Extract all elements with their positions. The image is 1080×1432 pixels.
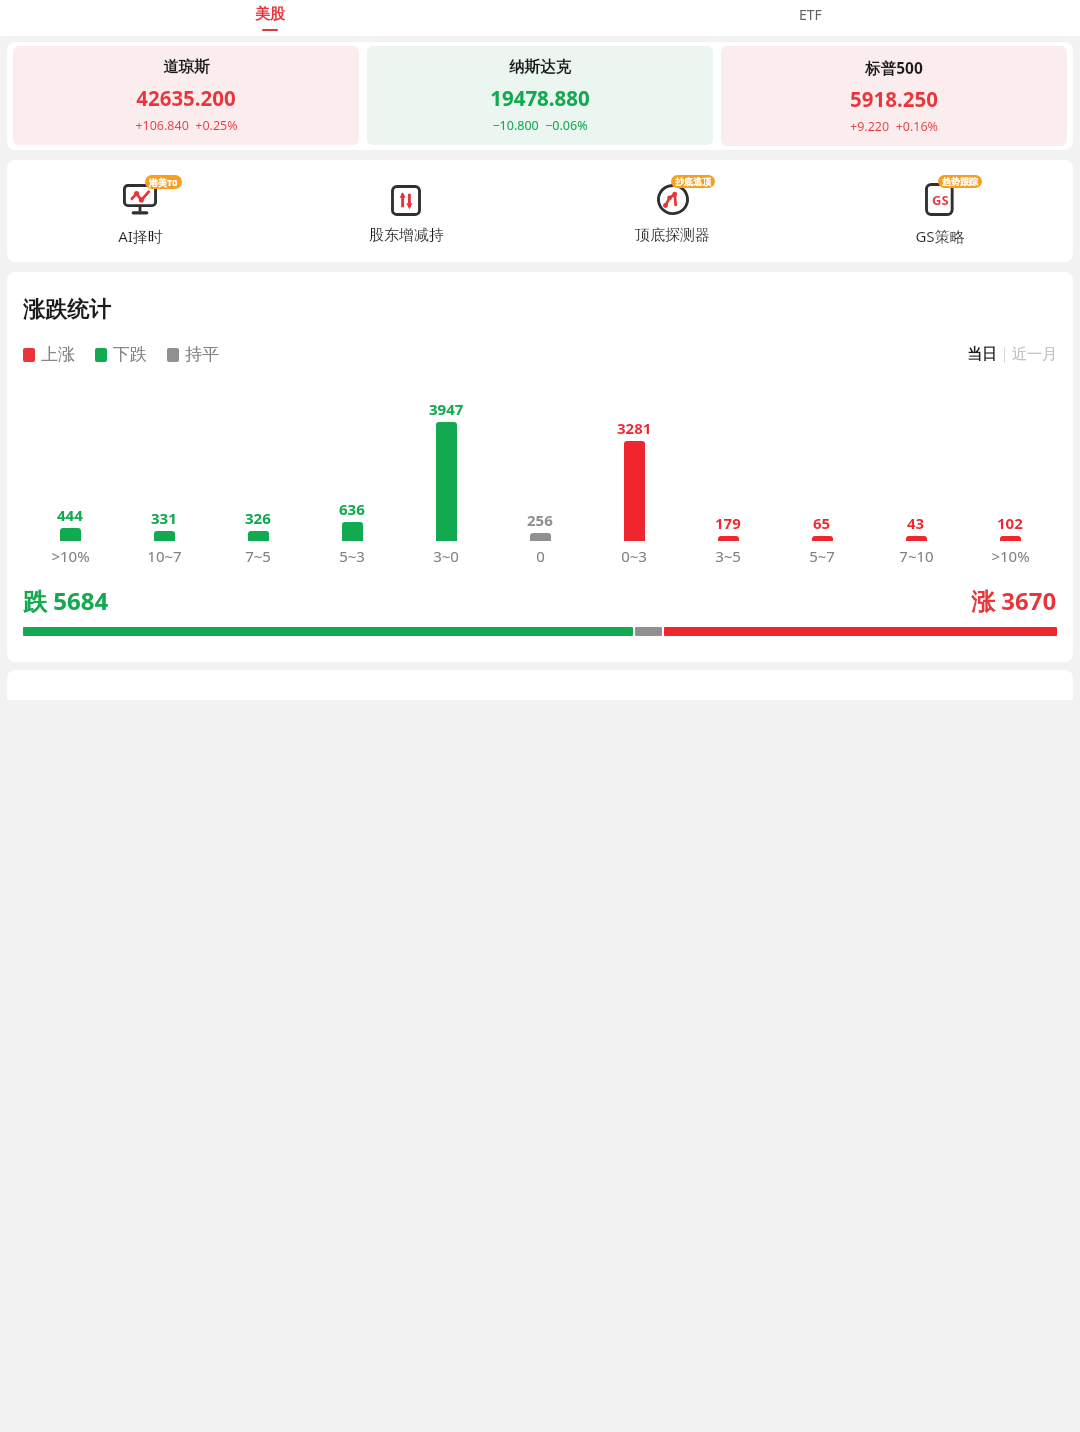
staticText: 636: [339, 499, 365, 519]
other: 顶底探测器: [656, 183, 690, 216]
other: GS策略: [923, 183, 957, 216]
staticText: 7~10: [899, 546, 934, 566]
staticText: +106.840 +0.25%: [135, 117, 238, 134]
staticText: 下跌: [113, 344, 147, 365]
staticText: >10%: [51, 546, 90, 566]
staticText: 444: [57, 505, 83, 525]
staticText: 3~5: [715, 546, 741, 566]
button[interactable]: 股东增减持: [273, 173, 539, 247]
staticText: 股东增减持: [369, 226, 444, 245]
staticText: GS: [932, 191, 949, 209]
staticText: 179: [715, 513, 741, 533]
staticText: 近一月: [1012, 345, 1057, 364]
staticText: 43: [907, 513, 925, 533]
staticText: 5~7: [809, 546, 835, 566]
staticText: ETF: [799, 5, 822, 24]
button[interactable]: AI择时: [7, 173, 273, 248]
staticText: 331: [151, 508, 177, 528]
staticText: 涨 3670: [971, 584, 1057, 617]
staticText: 5~3: [339, 546, 365, 566]
button[interactable]: 标普500: [721, 46, 1067, 146]
button[interactable]: GS策略: [806, 173, 1073, 248]
staticText: 7~5: [245, 546, 271, 566]
staticText: 顶底探测器: [635, 226, 710, 245]
staticText: 3281: [617, 418, 652, 438]
staticText: 65: [813, 513, 831, 533]
staticText: 美股: [255, 5, 285, 24]
button[interactable]: 近一月: [1012, 345, 1057, 364]
button[interactable]: 纳斯达克: [367, 46, 713, 145]
staticText: 256: [527, 510, 553, 530]
staticText: 道琼斯: [163, 57, 210, 77]
staticText: 0: [536, 546, 545, 566]
staticText: −10.800 −0.06%: [492, 117, 588, 134]
staticText: 上涨: [41, 344, 75, 365]
button[interactable]: ETF: [540, 0, 1080, 36]
staticText: 3947: [429, 399, 464, 419]
staticText: 持平: [185, 344, 219, 365]
staticText: 3~0: [433, 546, 459, 566]
staticText: 42635.200: [136, 84, 236, 112]
staticText: 0~3: [621, 546, 647, 566]
button[interactable]: 美股: [0, 0, 540, 36]
staticText: 跌 5684: [23, 584, 109, 617]
staticText: 19478.880: [490, 84, 590, 112]
staticText: 港美T0: [149, 176, 178, 188]
staticText: GS策略: [915, 226, 965, 246]
staticText: 5918.250: [850, 85, 938, 113]
other: 股东增减持: [389, 185, 423, 216]
staticText: 抄底逃顶: [675, 176, 711, 187]
staticText: 当日: [967, 345, 997, 364]
staticText: 趋势跟踪: [942, 176, 978, 187]
staticText: 326: [245, 508, 271, 528]
other: AI择时: [123, 184, 157, 216]
staticText: >10%: [991, 546, 1030, 566]
staticText: AI择时: [118, 226, 163, 246]
staticText: 102: [997, 513, 1023, 533]
staticText: 标普500: [865, 57, 923, 78]
staticText: 10~7: [147, 546, 182, 566]
staticText: 纳斯达克: [509, 57, 571, 77]
button[interactable]: 当日: [967, 345, 997, 364]
staticText: 涨跌统计: [23, 296, 111, 324]
button[interactable]: 道琼斯: [13, 46, 359, 145]
staticText: +9.220 +0.16%: [850, 118, 938, 135]
button[interactable]: 顶底探测器: [539, 173, 806, 247]
